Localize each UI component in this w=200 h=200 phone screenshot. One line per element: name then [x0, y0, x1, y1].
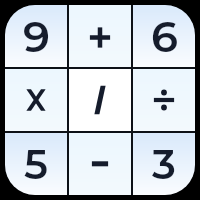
button[interactable]: Divide slash: [69, 69, 131, 131]
button[interactable]: Divide: [133, 69, 195, 131]
staticText: 5: [24, 139, 48, 189]
button[interactable]: Multiply: [5, 69, 67, 131]
button[interactable]: 6: [133, 5, 195, 67]
button[interactable]: Plus: [69, 5, 131, 67]
button[interactable]: 3: [133, 133, 195, 195]
staticText: 9: [23, 10, 50, 62]
staticText: 6: [151, 10, 178, 62]
staticText: 3: [152, 139, 176, 189]
button[interactable]: Minus: [69, 133, 131, 195]
button[interactable]: 9: [5, 5, 67, 67]
button[interactable]: 5: [5, 133, 67, 195]
